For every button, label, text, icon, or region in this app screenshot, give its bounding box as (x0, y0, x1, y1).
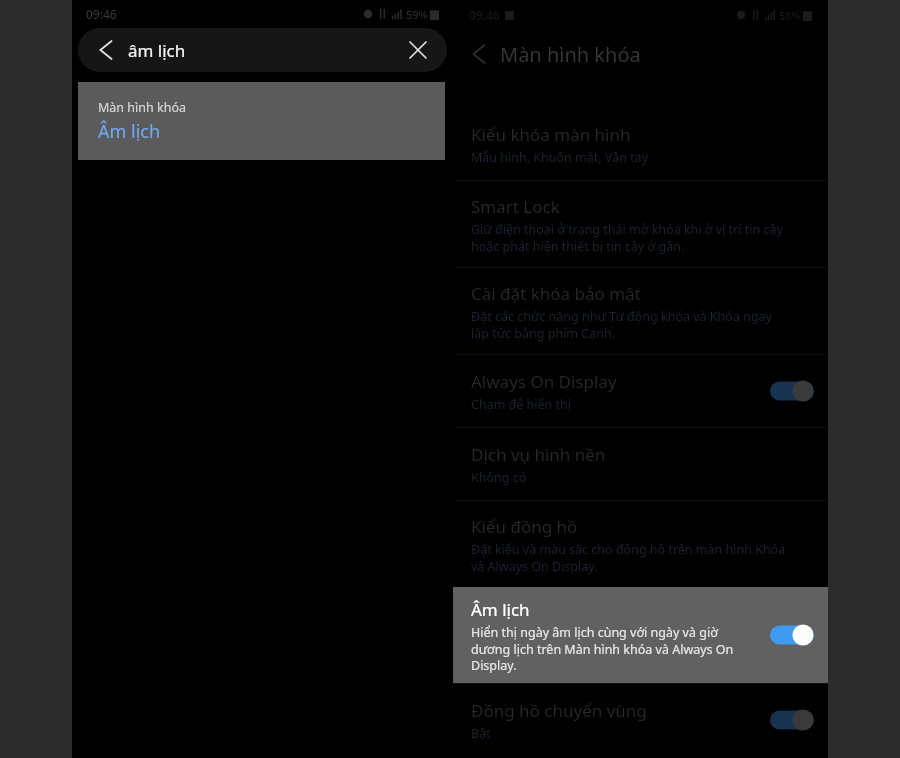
staticText: 58% (779, 8, 801, 23)
staticText: Âm lịch (98, 119, 161, 144)
staticText: Đặt các chức năng như Tự động khóa và Kh… (471, 308, 772, 341)
button[interactable]: Clear search (401, 33, 435, 67)
button[interactable]: Toggle (770, 623, 814, 647)
staticText: âm lịch (128, 39, 186, 62)
staticText: Đặt kiểu và màu sắc cho đồng hồ trên màn… (471, 541, 786, 574)
button[interactable]: Kiểu đồng hồ (453, 501, 828, 587)
staticText: Chạm để hiển thị (471, 396, 572, 413)
staticText: Màn hình khóa (98, 99, 186, 116)
button[interactable]: Toggle (770, 708, 814, 732)
staticText: Màn hình khóa (500, 41, 641, 68)
button[interactable]: Back (459, 36, 495, 72)
staticText: 59% (406, 7, 428, 22)
staticText: 09:46 (469, 7, 500, 23)
button[interactable]: Màn hình khóa (78, 82, 445, 160)
staticText: Hiển thị ngày âm lịch cùng với ngày và g… (471, 624, 734, 673)
staticText: Giữ điện thoại ở trạng thái mở khóa khi … (471, 221, 783, 254)
button[interactable]: Always On Display (453, 355, 828, 427)
button[interactable]: Dịch vụ hình nền (453, 428, 828, 500)
button[interactable]: Smart Lock (453, 181, 828, 267)
staticText: Smart Lock (471, 195, 560, 218)
staticText: Không có (471, 469, 527, 486)
staticText: Kiểu khóa màn hình (471, 123, 631, 146)
button[interactable]: Âm lịch (453, 587, 828, 683)
button[interactable]: Đồng hồ chuyển vùng (453, 684, 828, 756)
staticText: 09:46 (86, 6, 117, 22)
staticText: Mẫu hình, Khuôn mặt, Vân tay (471, 149, 649, 166)
button[interactable]: Back (86, 32, 122, 68)
staticText: Always On Display (471, 370, 617, 393)
staticText: Dịch vụ hình nền (471, 443, 606, 466)
staticText: Kiểu đồng hồ (471, 515, 578, 538)
button[interactable]: Cài đặt khóa bảo mật (453, 268, 828, 354)
button[interactable]: Kiểu khóa màn hình (453, 108, 828, 180)
staticText: Cài đặt khóa bảo mật (471, 282, 641, 305)
button[interactable]: Back (78, 28, 447, 72)
staticText: Bật (471, 725, 491, 742)
staticText: Đồng hồ chuyển vùng (471, 699, 647, 722)
staticText: Âm lịch (471, 598, 530, 621)
button[interactable]: Toggle (770, 379, 814, 403)
